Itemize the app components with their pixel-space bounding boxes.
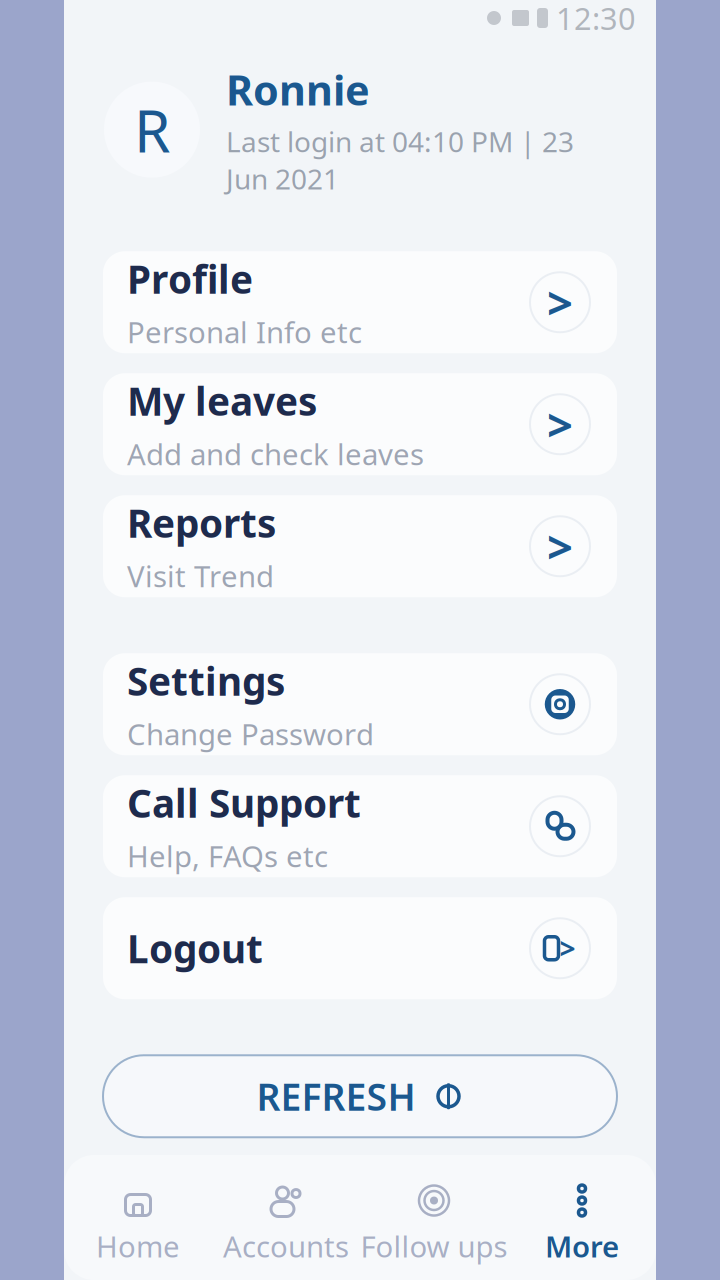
staticText: Change Password (127, 714, 374, 753)
staticText: > (559, 930, 575, 967)
staticText: REFRESH (256, 1071, 415, 1121)
button[interactable]: Call Support (103, 775, 617, 877)
button[interactable]: Accounts (212, 1174, 360, 1274)
button[interactable]: Reports (103, 495, 617, 597)
button[interactable]: Home (64, 1174, 212, 1274)
staticText: Ronnie (226, 62, 370, 117)
staticText: Profile (127, 253, 253, 304)
staticText: Follow ups (360, 1226, 507, 1265)
staticText: Last login at 04:10 PM | 23 Jun 2021 (226, 123, 574, 197)
staticText: R (134, 91, 170, 169)
staticText: Add and check leaves (127, 434, 424, 473)
staticText: Home (96, 1226, 180, 1265)
button[interactable]: Follow ups (360, 1174, 508, 1274)
staticText: Call Support (127, 777, 361, 828)
staticText: Accounts (223, 1226, 349, 1265)
staticText: > (547, 272, 573, 332)
button[interactable]: REFRESH (103, 1055, 617, 1137)
button[interactable]: Logout (103, 897, 617, 999)
staticText: Settings (127, 655, 285, 706)
staticText: Logout (127, 923, 263, 974)
staticText: > (547, 394, 573, 454)
button[interactable]: More (508, 1174, 656, 1274)
button[interactable]: My leaves (103, 373, 617, 475)
button[interactable]: Profile (103, 251, 617, 353)
staticText: Visit Trend (127, 556, 274, 595)
staticText: More (545, 1226, 619, 1265)
staticText: 12:30 (556, 0, 636, 38)
staticText: Reports (127, 497, 276, 548)
staticText: Personal Info etc (127, 312, 362, 351)
staticText: My leaves (127, 375, 317, 426)
staticText: Help, FAQs etc (127, 836, 328, 875)
button[interactable]: Settings (103, 653, 617, 755)
staticText: > (547, 516, 573, 576)
